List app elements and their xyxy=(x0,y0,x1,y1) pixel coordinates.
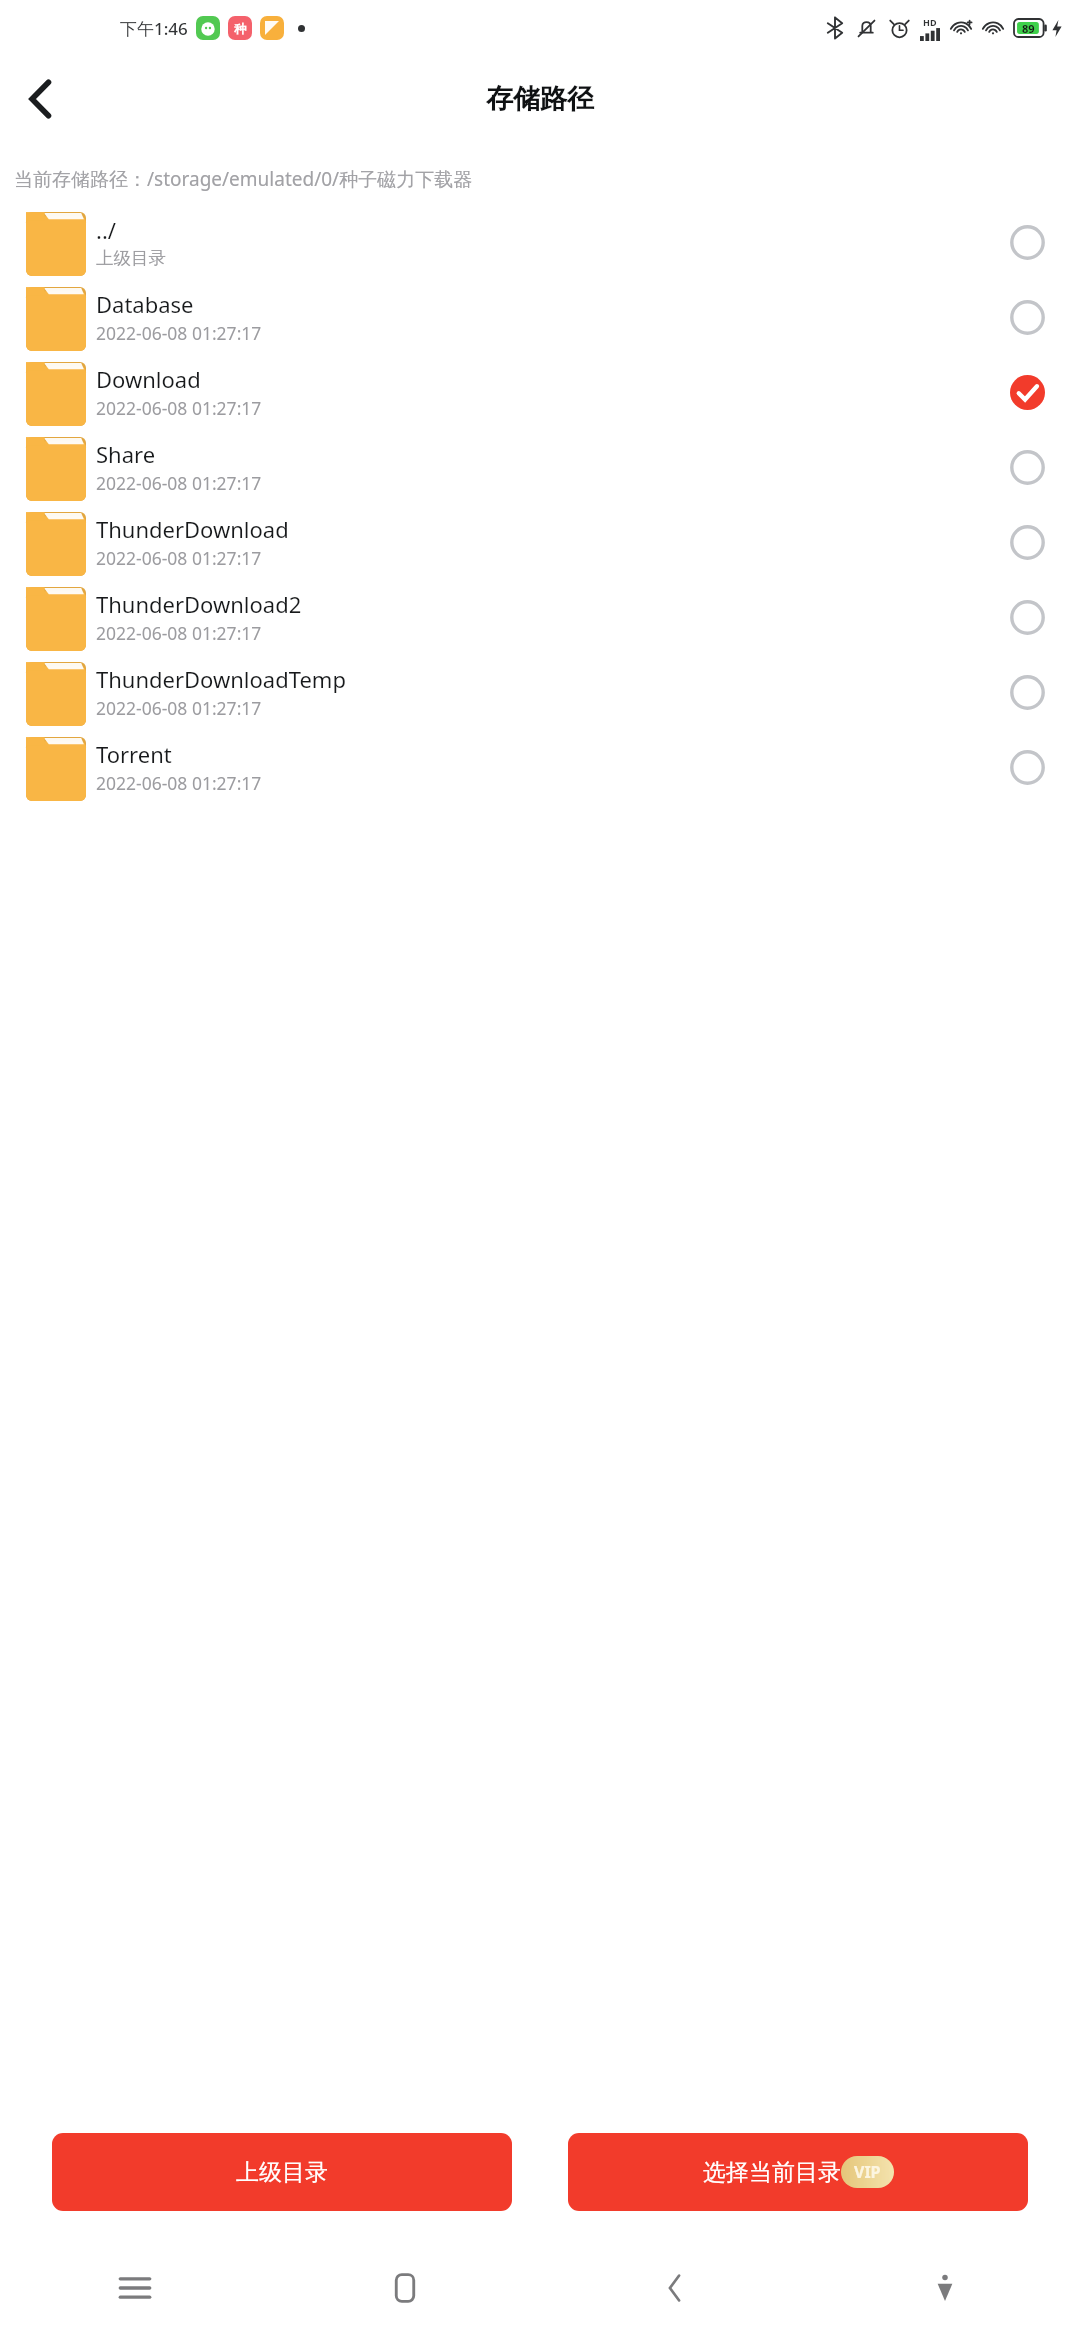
staticText: 种 xyxy=(234,21,246,36)
button[interactable]: Download xyxy=(0,354,1080,429)
staticText: ThunderDownload2 xyxy=(96,589,302,619)
button[interactable]: ../ xyxy=(0,204,1080,279)
button[interactable]: ThunderDownload xyxy=(0,504,1080,579)
staticText: 上级目录 xyxy=(96,247,166,269)
staticText: 上级目录 xyxy=(236,2158,328,2187)
staticText: 2022-06-08 01:27:17 xyxy=(96,696,262,720)
button[interactable]: Select folder xyxy=(1004,594,1050,640)
staticText: ThunderDownloadTemp xyxy=(96,664,346,694)
button[interactable]: Back xyxy=(8,67,72,131)
staticText: 2022-06-08 01:27:17 xyxy=(96,471,262,495)
button[interactable]: Select folder xyxy=(1004,444,1050,490)
staticText: 2022-06-08 01:27:17 xyxy=(96,771,262,795)
staticText: Download xyxy=(96,364,201,394)
staticText: 2022-06-08 01:27:17 xyxy=(96,396,262,420)
staticText: 2022-06-08 01:27:17 xyxy=(96,621,262,645)
staticText: 当前存储路径：/storage/emulated/0/种子磁力下载器 xyxy=(14,166,473,192)
button[interactable]: Select folder xyxy=(1004,219,1050,265)
button[interactable]: ThunderDownload2 xyxy=(0,579,1080,654)
button[interactable]: Hide navigation bar xyxy=(810,2236,1080,2340)
button[interactable]: Select folder xyxy=(1004,744,1050,790)
staticText: 选择当前目录 xyxy=(703,2158,841,2187)
button[interactable]: Share xyxy=(0,429,1080,504)
button[interactable]: Torrent xyxy=(0,729,1080,804)
button[interactable]: Home xyxy=(270,2236,540,2340)
staticText: ThunderDownload xyxy=(96,514,289,544)
button[interactable]: Database xyxy=(0,279,1080,354)
button[interactable]: Recent apps xyxy=(0,2236,270,2340)
button[interactable]: Back xyxy=(540,2236,810,2340)
button[interactable]: Select folder xyxy=(1004,294,1050,340)
staticText: 2022-06-08 01:27:17 xyxy=(96,321,262,345)
staticText: HD xyxy=(923,16,937,28)
staticText: Share xyxy=(96,439,156,469)
staticText: 下午1:46 xyxy=(120,17,188,40)
staticText: Database xyxy=(96,289,194,319)
button[interactable]: ThunderDownloadTemp xyxy=(0,654,1080,729)
staticText: 2022-06-08 01:27:17 xyxy=(96,546,262,570)
staticText: ../ xyxy=(96,215,116,245)
button[interactable]: Selected folder xyxy=(1004,369,1050,415)
staticText: 存储路径 xyxy=(486,82,594,116)
button[interactable]: Select folder xyxy=(1004,669,1050,715)
button[interactable]: 上级目录 xyxy=(52,2133,512,2211)
staticText: 89 xyxy=(1022,21,1035,36)
staticText: Torrent xyxy=(96,739,172,769)
button[interactable]: 选择当前目录 xyxy=(568,2133,1028,2211)
button[interactable]: Select folder xyxy=(1004,519,1050,565)
staticText: VIP xyxy=(854,2161,881,2183)
